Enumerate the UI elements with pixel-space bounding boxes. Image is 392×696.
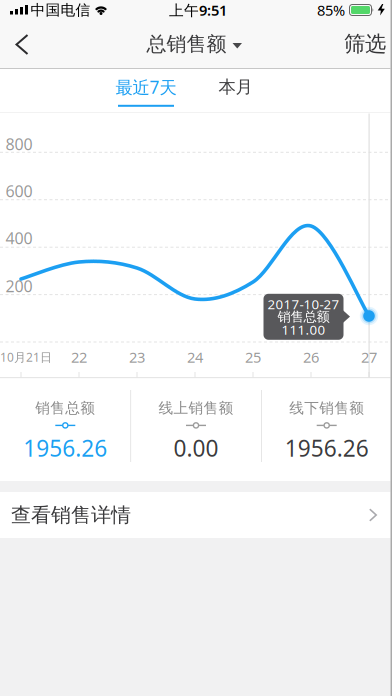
staticText: 1956.26 [285, 433, 369, 463]
button[interactable]: 筛选 [344, 19, 392, 69]
staticText: 24 [187, 347, 203, 367]
staticText: 23 [129, 347, 145, 367]
staticText: 26 [303, 347, 319, 367]
staticText: 85% [317, 0, 345, 20]
staticText: 中国电信 [30, 1, 90, 19]
staticText: 600 [5, 180, 32, 202]
staticText: 线下销售额 [289, 399, 364, 417]
staticText: 800 [5, 133, 32, 155]
staticText: 筛选 [344, 31, 386, 57]
staticText: 1956.26 [23, 433, 107, 463]
staticText: 总销售额 [146, 32, 226, 56]
staticText: 0.00 [173, 433, 218, 463]
staticText: 本月 [218, 76, 252, 98]
button[interactable]: 本月 [200, 70, 270, 104]
button[interactable]: 总销售额 [146, 32, 242, 56]
staticText: 27 [361, 347, 377, 367]
staticText: 200 [5, 275, 32, 297]
button[interactable]: 查看销售详情 [0, 492, 392, 538]
staticText: 2017-10-27 [267, 295, 339, 313]
staticText: 线上销售额 [158, 399, 233, 417]
staticText: 最近7天 [115, 75, 176, 98]
staticText: 上午9:51 [169, 0, 227, 20]
staticText: 22 [71, 347, 87, 367]
staticText: 10月21日 [0, 349, 52, 365]
staticText: 销售总额 [35, 399, 95, 417]
staticText: 销售总额 [277, 309, 329, 325]
button[interactable]: Back [0, 20, 29, 69]
button[interactable]: 最近7天 [101, 70, 191, 104]
staticText: 400 [5, 227, 32, 249]
staticText: 25 [245, 347, 261, 367]
staticText: 111.00 [281, 321, 325, 338]
staticText: 查看销售详情 [11, 503, 131, 527]
